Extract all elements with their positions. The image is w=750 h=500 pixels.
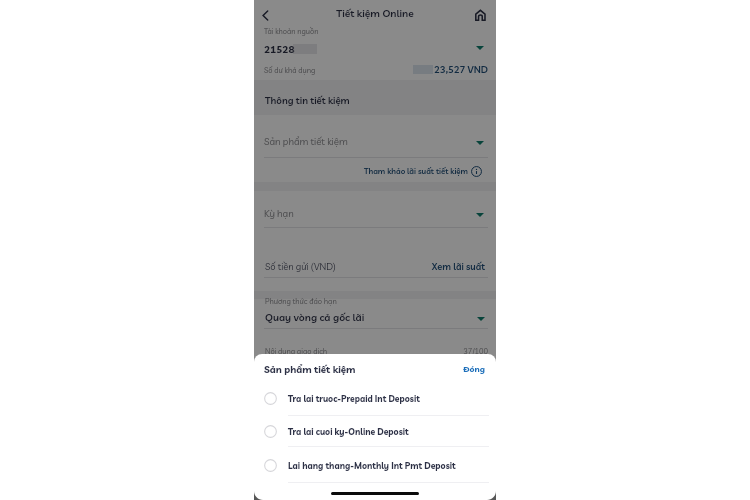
staticText: Tiết kiệm Online [285, 7, 465, 20]
button[interactable] [254, 291, 496, 335]
staticText: 23,527 VND [254, 63, 488, 75]
staticText: 37/100 [254, 346, 488, 355]
button[interactable]: Back [257, 4, 280, 27]
staticText: 21528 [264, 43, 295, 56]
staticText: Đóng [254, 364, 485, 375]
staticText: Tra lai truoc-Prepaid Int Deposit [288, 393, 420, 404]
button[interactable] [254, 196, 496, 227]
staticText: Lai hang thang-Monthly Int Pmt Deposit [288, 460, 456, 471]
staticText: Số dư khả dụng [264, 65, 316, 74]
button[interactable]: Home [469, 4, 492, 27]
staticText: Tài khoản nguồn [264, 27, 319, 36]
staticText: Kỳ hạn [264, 207, 294, 219]
staticText: Quay vòng cả gốc lãi [265, 311, 365, 324]
button[interactable]: Tra lai truoc-Prepaid Int Deposit [254, 382, 496, 415]
staticText: Phương thức đáo hạn [265, 296, 337, 305]
button[interactable] [254, 123, 496, 157]
staticText: Sản phẩm tiết kiệm [264, 135, 348, 147]
staticText: Sản phẩm tiết kiệm [264, 363, 356, 375]
staticText: Tham khảo lãi suất tiết kiệm [364, 166, 468, 176]
staticText: Số tiền gửi (VND) [265, 261, 336, 273]
button[interactable]: Tham khảo lãi suất tiết kiệm [364, 164, 482, 178]
staticText: Thông tin tiết kiệm [265, 94, 350, 106]
staticText: Xem lãi suất [254, 261, 485, 273]
button[interactable]: Tra lai cuoi ky-Online Deposit [254, 415, 496, 448]
staticText: Nội dung giao dịch [265, 346, 328, 355]
button[interactable]: Lai hang thang-Monthly Int Pmt Deposit [254, 449, 496, 482]
staticText: Tra lai cuoi ky-Online Deposit [288, 426, 409, 437]
button[interactable] [458, 363, 486, 379]
button[interactable] [430, 259, 488, 274]
